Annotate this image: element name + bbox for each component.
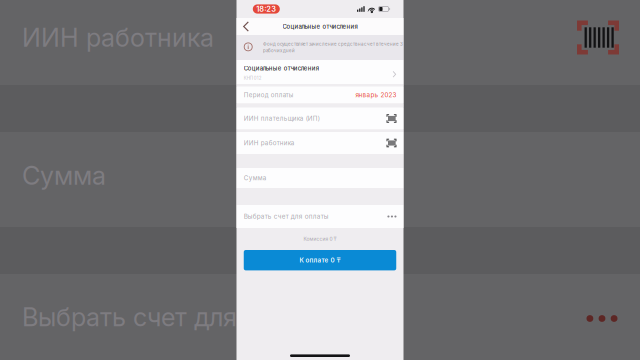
staticText: ИИН работника (22, 22, 214, 53)
staticText: Комиссия 0 ₸ (303, 236, 336, 242)
staticText: Сумма (22, 160, 106, 191)
staticText: Фонд осуществляет зачисление средств на … (263, 42, 403, 47)
staticText: 18:23 (256, 4, 276, 13)
button[interactable]: Выбрать счет для оплаты (236, 205, 403, 228)
button[interactable]: ИИН плательщика (ИП) (236, 107, 403, 129)
staticText: январь 2023 (355, 91, 396, 99)
staticText: Социальные отчисления (282, 23, 357, 30)
staticText: Период оплаты (244, 91, 294, 99)
staticText: Сумма (244, 174, 267, 182)
button[interactable]: Период оплаты (236, 86, 403, 103)
staticText: ИИН работника (244, 139, 295, 147)
button[interactable]: Социальные отчисления (236, 60, 403, 84)
staticText: КНП 012 (244, 75, 262, 81)
button[interactable]: К оплате 0 ₸ (244, 250, 396, 270)
staticText: рабочих дней (263, 48, 295, 53)
button[interactable]: ИИН работника (236, 132, 403, 154)
staticText: К оплате 0 ₸ (299, 256, 340, 264)
staticText: Выбрать счет для оплаты (22, 302, 332, 332)
staticText: ИИН плательщика (ИП) (244, 115, 320, 122)
button[interactable]: Back (236, 18, 255, 35)
staticText: Социальные отчисления (244, 65, 319, 72)
staticText: Выбрать счет для оплаты (244, 213, 329, 220)
button[interactable]: Сумма (236, 168, 403, 188)
